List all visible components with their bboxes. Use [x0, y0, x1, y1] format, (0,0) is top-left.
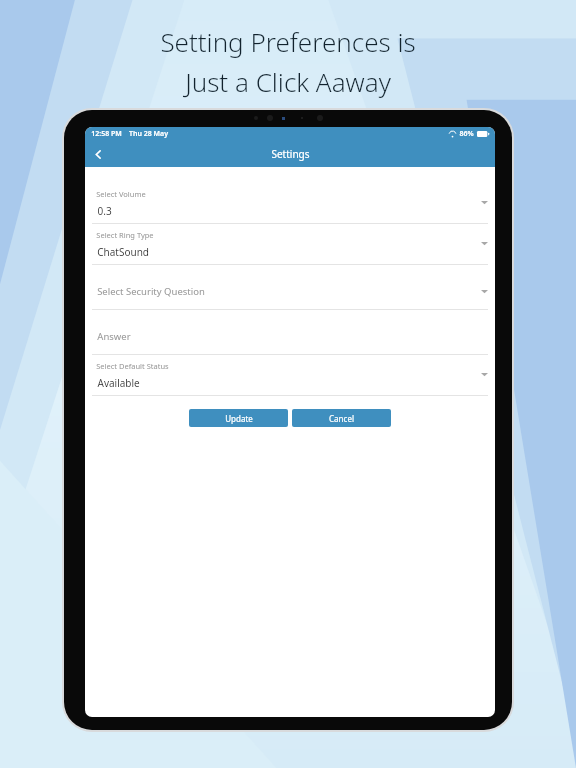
staticText: Available — [92, 376, 140, 390]
button[interactable]: Select Volume — [85, 183, 495, 223]
button[interactable]: Cancel — [292, 409, 391, 427]
staticText: Select Ring Type — [92, 230, 154, 240]
button[interactable]: Select Ring Type — [85, 224, 495, 264]
staticText: Select Security Question — [92, 285, 205, 298]
staticText: 12:58 PM — [91, 129, 122, 139]
button[interactable]: Update — [189, 409, 288, 427]
staticText: Select Default Status — [92, 361, 169, 371]
staticText: 86% — [459, 129, 474, 139]
button[interactable]: Select Default Status — [85, 355, 495, 395]
staticText: Just a Click Aaway — [185, 64, 391, 99]
staticText: ChatSound — [92, 245, 149, 259]
button[interactable]: Answer — [85, 310, 495, 354]
staticText: 0.3 — [92, 204, 112, 218]
staticText: Cancel — [329, 413, 354, 424]
button[interactable]: Select Security Question — [85, 265, 495, 309]
button[interactable]: Back — [85, 141, 111, 167]
staticText: Setting Preferences is — [160, 24, 416, 59]
staticText: Thu 28 May — [129, 129, 168, 139]
staticText: Answer — [92, 330, 131, 343]
staticText: Settings — [271, 147, 310, 161]
staticText: Update — [225, 413, 253, 424]
staticText: Select Volume — [92, 189, 146, 199]
